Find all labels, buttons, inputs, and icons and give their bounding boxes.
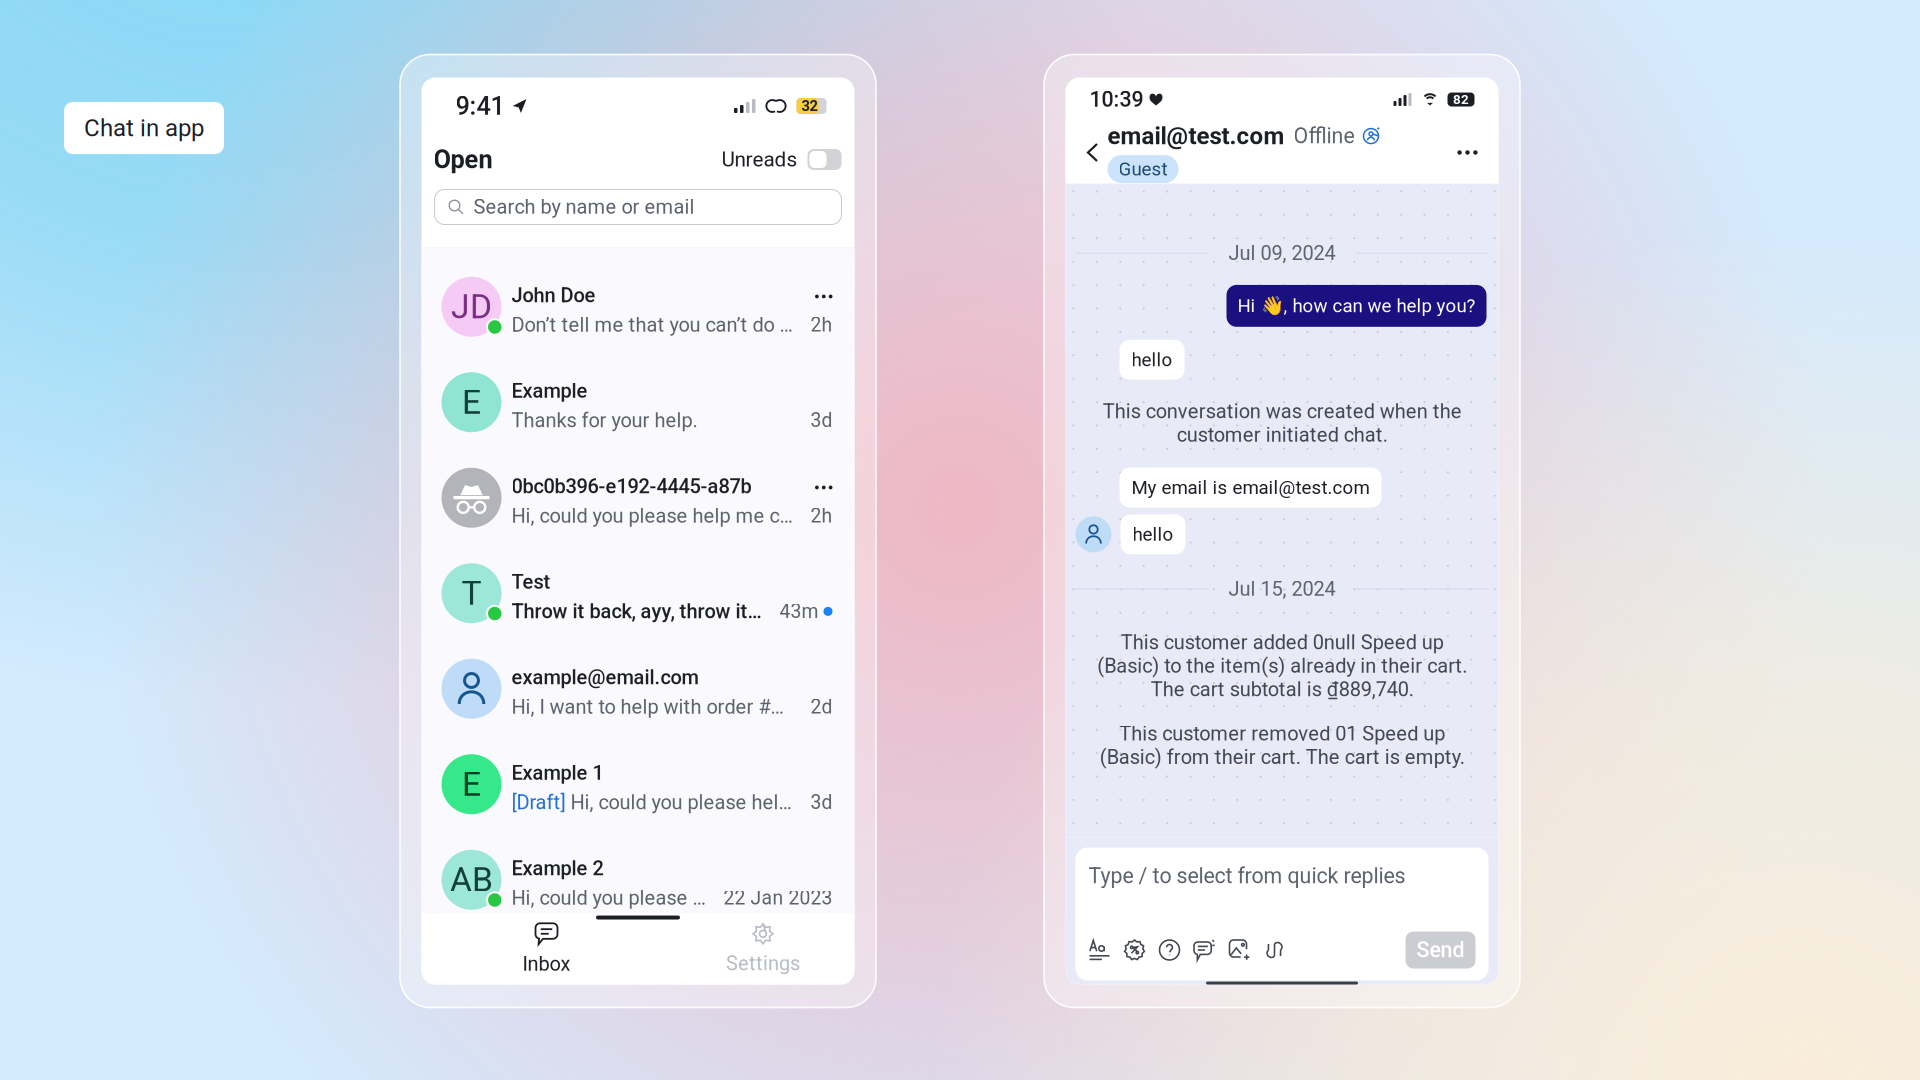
- staticText: [Draft]: [511, 791, 565, 814]
- staticText: 9:41: [455, 91, 504, 121]
- staticText: Open: [433, 145, 492, 174]
- staticText: Jul 09, 2024: [1228, 241, 1335, 265]
- staticText: E: [462, 383, 481, 422]
- staticText: hello: [1132, 523, 1173, 545]
- staticText: Hi, could you please help us che…: [570, 791, 792, 814]
- button[interactable]: JD: [421, 248, 854, 344]
- staticText: 2h: [810, 505, 832, 527]
- button[interactable]: Add image: [1226, 937, 1252, 963]
- staticText: Chat in app: [84, 114, 204, 142]
- button[interactable]: Inbox: [421, 925, 671, 973]
- button[interactable]: E: [421, 344, 854, 439]
- staticText: Hi, I want to help with order #1004: [511, 695, 792, 719]
- staticText: Hi 👋, how can we help you?: [1237, 295, 1475, 317]
- staticText: This conversation was created when the c…: [1102, 400, 1461, 447]
- button[interactable]: Apply discount: [1121, 937, 1147, 963]
- staticText: Offline: [1293, 124, 1354, 149]
- staticText: My email is email@test.com: [1131, 477, 1369, 498]
- button[interactable]: Text formatting: [1086, 937, 1112, 963]
- staticText: John Doe: [511, 284, 595, 307]
- button[interactable]: T: [421, 535, 854, 630]
- staticText: Guest: [1118, 158, 1167, 180]
- staticText: 2h: [810, 314, 832, 336]
- staticText: Search by name or email: [473, 195, 694, 219]
- staticText: Hi, could you please help me check this …: [511, 504, 792, 528]
- staticText: Inbox: [522, 952, 570, 976]
- staticText: This customer added 0null Speed up (Basi…: [1097, 631, 1467, 701]
- button[interactable]: example@email.com: [421, 630, 854, 726]
- staticText: 3d: [810, 791, 832, 814]
- button[interactable]: [807, 149, 841, 170]
- staticText: AB: [450, 860, 493, 899]
- staticText: Throw it back, ayy, throw it back: [511, 600, 761, 623]
- button[interactable]: E: [421, 726, 854, 821]
- button[interactable]: Quick replies: [1191, 937, 1217, 963]
- staticText: Example 2: [511, 857, 603, 880]
- staticText: Unreads: [721, 147, 797, 172]
- button[interactable]: Back: [1079, 135, 1105, 169]
- button[interactable]: 0bc0b396-e192-4445-a87b: [421, 439, 854, 535]
- button[interactable]: Chat in app: [64, 102, 224, 154]
- button[interactable]: Settings: [671, 925, 854, 973]
- staticText: 22 Jan 2023: [723, 887, 832, 909]
- staticText: 82: [1453, 92, 1469, 107]
- staticText: Jul 15, 2024: [1228, 577, 1335, 601]
- staticText: 3d: [810, 409, 832, 432]
- staticText: Don’t tell me that you can’t do that yo.…: [511, 313, 792, 337]
- staticText: Hi, could you please help me ch…: [511, 886, 705, 910]
- button[interactable]: Help: [1156, 937, 1182, 963]
- button[interactable]: Search by name or email: [434, 189, 841, 224]
- staticText: hello: [1131, 349, 1172, 371]
- staticText: Example: [511, 379, 587, 403]
- staticText: T: [461, 574, 481, 613]
- staticText: This customer removed 01 Speed up (Basic…: [1099, 722, 1464, 769]
- staticText: email@test.com: [1107, 122, 1284, 150]
- staticText: Send: [1416, 937, 1464, 962]
- staticText: Example 1: [511, 761, 603, 785]
- staticText: JD: [451, 287, 492, 326]
- button[interactable]: Send: [1405, 931, 1475, 968]
- staticText: example@email.com: [511, 666, 698, 689]
- staticText: 10:39: [1089, 87, 1143, 112]
- staticText: 0bc0b396-e192-4445-a87b: [511, 475, 751, 498]
- staticText: Thanks for your help.: [511, 409, 697, 432]
- button[interactable]: AB: [421, 821, 854, 917]
- staticText: E: [462, 765, 481, 804]
- staticText: 2d: [810, 696, 832, 718]
- staticText: 32: [801, 97, 817, 115]
- staticText: 43m: [779, 600, 818, 623]
- staticText: Type / to select from quick replies: [1088, 863, 1405, 888]
- button[interactable]: More options: [1450, 137, 1484, 167]
- button[interactable]: Attach file: [1261, 937, 1287, 963]
- staticText: Test: [511, 570, 550, 594]
- staticText: Settings: [726, 952, 800, 975]
